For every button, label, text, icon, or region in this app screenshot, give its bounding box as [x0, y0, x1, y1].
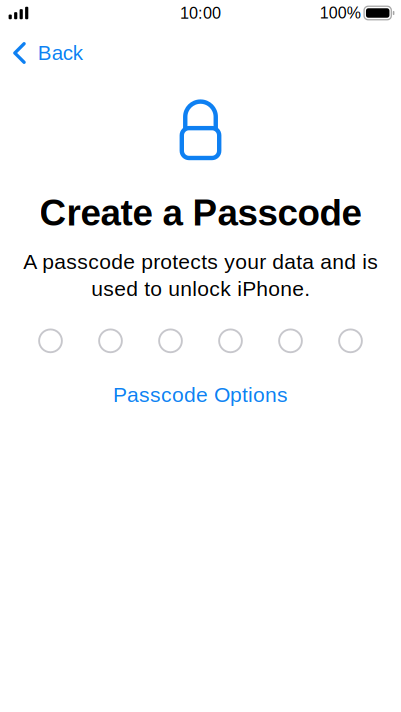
button[interactable]: Back — [0, 36, 93, 69]
button[interactable]: Passcode Options — [99, 376, 302, 413]
staticText: A passcode protects your data and is use… — [23, 250, 378, 300]
staticText: 10:00 — [180, 4, 221, 22]
staticText: Back — [38, 41, 83, 64]
staticText: Passcode Options — [113, 383, 288, 406]
staticText: Create a Passcode — [39, 192, 361, 233]
staticText: 100% — [320, 4, 361, 22]
